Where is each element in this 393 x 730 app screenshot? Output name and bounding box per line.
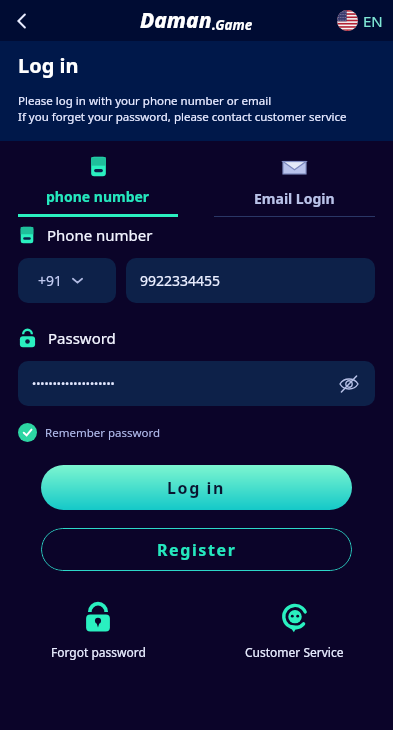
- staticText: If you forget your password, please cont…: [18, 109, 347, 125]
- staticText: Log in: [18, 52, 79, 79]
- staticText: .Game: [212, 16, 253, 34]
- staticText: Register: [157, 539, 237, 561]
- button[interactable]: EN: [335, 6, 385, 35]
- staticText: ••••••••••••••••••••: [32, 376, 115, 391]
- staticText: +91: [38, 271, 63, 290]
- staticText: Remember password: [45, 425, 161, 441]
- button[interactable]: +91: [18, 258, 116, 303]
- staticText: Daman: [140, 6, 212, 35]
- button[interactable]: Remember password: [16, 421, 163, 444]
- button[interactable]: 9922334455: [126, 258, 375, 303]
- staticText: Forgot password: [51, 644, 146, 660]
- button[interactable]: Forgot password: [0, 599, 196, 662]
- staticText: Please log in with your phone number or …: [18, 93, 272, 109]
- staticText: Customer Service: [245, 644, 344, 660]
- button[interactable]: Email Login: [196, 141, 393, 217]
- button[interactable]: Back: [2, 1, 42, 41]
- staticText: Password: [48, 328, 116, 348]
- button[interactable]: phone number: [0, 141, 196, 217]
- staticText: EN: [363, 11, 383, 31]
- button[interactable]: Log in: [41, 465, 352, 510]
- staticText: Phone number: [47, 225, 153, 245]
- staticText: Log in: [167, 477, 226, 499]
- button[interactable]: Register: [41, 528, 352, 571]
- staticText: Email Login: [254, 189, 335, 208]
- button[interactable]: Show password: [334, 369, 364, 399]
- button[interactable]: Customer Service: [196, 599, 393, 662]
- staticText: phone number: [46, 187, 150, 206]
- staticText: 9922334455: [140, 271, 221, 290]
- button[interactable]: ••••••••••••••••••••: [18, 361, 375, 406]
